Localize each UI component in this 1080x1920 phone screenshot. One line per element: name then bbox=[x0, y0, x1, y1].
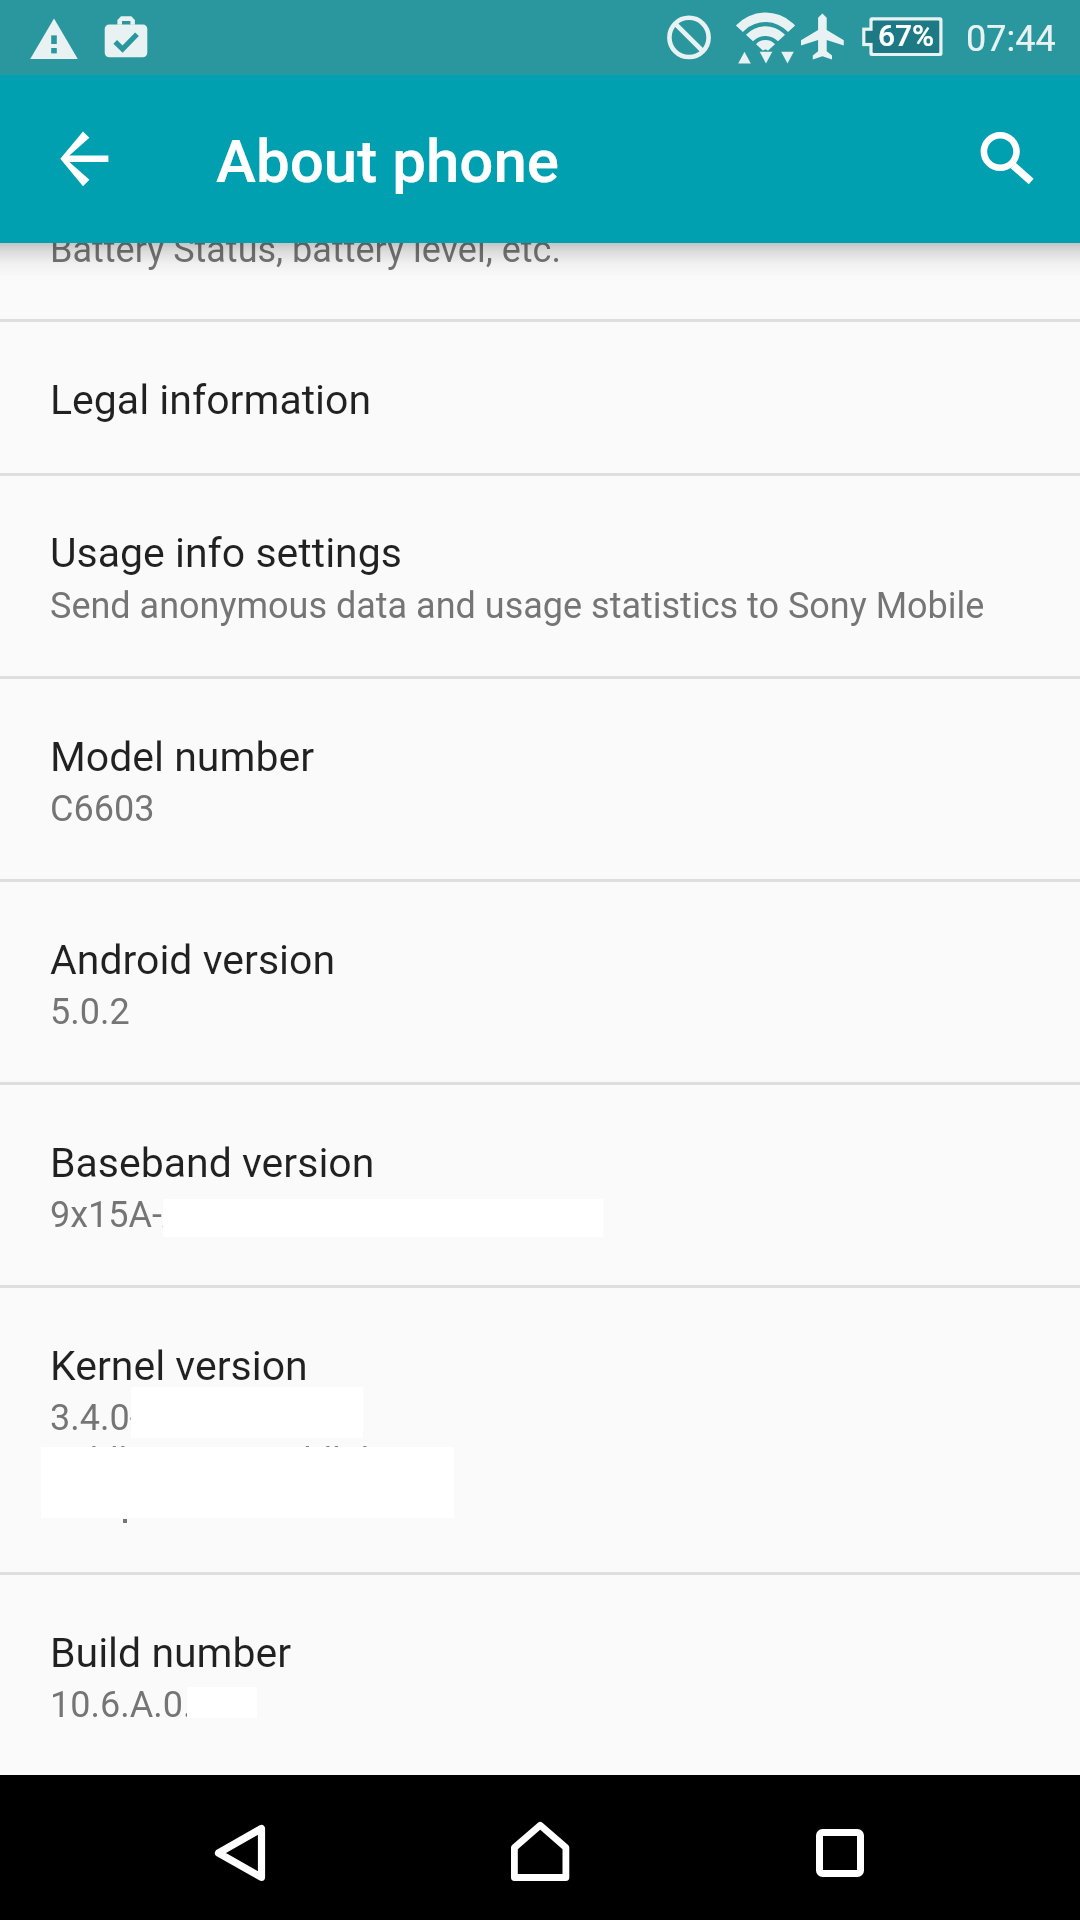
button[interactable]: Home bbox=[480, 1775, 600, 1895]
staticText: 67% bbox=[878, 18, 935, 53]
staticText: 9x15A-A bbox=[50, 1194, 186, 1236]
staticText: Usage info settings bbox=[50, 529, 402, 577]
staticText: 10.6.A.0. bbox=[50, 1684, 193, 1726]
button[interactable]: Model number bbox=[0, 679, 1080, 880]
button[interactable]: Usage info settings bbox=[0, 476, 1080, 677]
staticText: About phone bbox=[216, 126, 559, 196]
staticText: C6603 bbox=[50, 788, 155, 830]
staticText: Battery Status, battery level, etc. bbox=[50, 229, 561, 271]
button[interactable]: Search bbox=[952, 103, 1064, 215]
staticText: Legal information bbox=[50, 376, 372, 424]
staticText: anldlneruser@Bldlnlr bbox=[50, 1441, 382, 1483]
staticText: Send anonymous data and usage statistics… bbox=[50, 585, 985, 627]
staticText: Baseband version bbox=[50, 1139, 375, 1187]
staticText: 07:44 bbox=[966, 18, 1056, 60]
button[interactable]: Legal information bbox=[0, 322, 1080, 474]
staticText: Kernel version bbox=[50, 1342, 308, 1390]
button[interactable]: Build number bbox=[0, 1575, 1080, 1775]
staticText: Build number bbox=[50, 1629, 292, 1677]
button[interactable]: Android version bbox=[0, 882, 1080, 1083]
staticText: 5.0.2 bbox=[50, 991, 130, 1033]
staticText: Android version bbox=[50, 936, 336, 984]
staticText: 3.4.0- bbox=[50, 1397, 140, 1439]
button[interactable]: Navigate up bbox=[30, 103, 142, 215]
button[interactable]: Recent apps bbox=[780, 1775, 900, 1895]
button[interactable]: Kernel version bbox=[0, 1288, 1080, 1573]
staticText: Model number bbox=[50, 733, 315, 781]
button[interactable]: Baseband version bbox=[0, 1085, 1080, 1286]
button[interactable]: Back bbox=[180, 1775, 300, 1895]
